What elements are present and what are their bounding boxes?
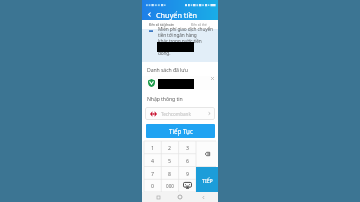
staticText: Miễn phí giao dịch chuyển tiền tới ngân … bbox=[158, 26, 213, 56]
button[interactable]: 9 bbox=[179, 167, 196, 180]
button[interactable]: Back bbox=[142, 9, 156, 20]
button[interactable]: 4 bbox=[144, 154, 161, 167]
staticText: Chuyển tiền bbox=[156, 10, 198, 20]
staticText: Techcombank bbox=[161, 111, 191, 117]
button[interactable]: Đến số tài khoản bbox=[142, 20, 180, 29]
button[interactable]: 5 bbox=[161, 154, 178, 167]
staticText: 3 bbox=[186, 144, 189, 151]
staticText: 000 bbox=[166, 183, 174, 189]
staticText: Danh sách đã lưu bbox=[147, 66, 188, 73]
staticText: 1 bbox=[151, 144, 154, 151]
staticText: 0 bbox=[151, 182, 154, 189]
other: Keyboard bbox=[183, 182, 192, 189]
staticText: 4 bbox=[151, 157, 154, 164]
staticText: 7 bbox=[151, 170, 154, 177]
button[interactable]: Back bbox=[196, 192, 210, 202]
button[interactable]: Đến số thẻ bbox=[180, 20, 218, 29]
button[interactable]: Home bbox=[173, 192, 187, 202]
button[interactable]: Tiếp Tục bbox=[146, 124, 215, 138]
button[interactable]: 0 bbox=[144, 179, 161, 192]
staticText: Tiếp Tục bbox=[169, 127, 193, 135]
staticText: Nhập thông tin bbox=[147, 95, 183, 102]
button[interactable]: 8 bbox=[161, 167, 178, 180]
button[interactable]: 2 bbox=[161, 141, 178, 154]
staticText: TIẾP bbox=[202, 177, 213, 184]
other: Remove bbox=[211, 77, 214, 80]
staticText: 6 bbox=[186, 157, 189, 164]
staticText: 9 bbox=[186, 170, 189, 177]
staticText: Đến số thẻ bbox=[191, 23, 207, 27]
button[interactable]: Recents bbox=[151, 192, 165, 202]
staticText: Đến số tài khoản bbox=[149, 23, 174, 27]
button[interactable]: 7 bbox=[144, 167, 161, 180]
staticText: 2 bbox=[168, 144, 171, 151]
button[interactable]: 000 bbox=[161, 179, 178, 192]
staticText: 8 bbox=[168, 170, 171, 177]
button[interactable]: Backspace bbox=[196, 141, 218, 167]
button[interactable]: TIẾP bbox=[196, 167, 218, 193]
button[interactable]: 3 bbox=[179, 141, 196, 154]
button[interactable]: 1 bbox=[144, 141, 161, 154]
button[interactable]: 6 bbox=[179, 154, 196, 167]
button[interactable]: Techcombank bbox=[145, 107, 215, 120]
button[interactable]: Remove bbox=[142, 76, 218, 90]
staticText: 5 bbox=[168, 157, 171, 164]
button[interactable]: Keyboard bbox=[179, 179, 196, 192]
